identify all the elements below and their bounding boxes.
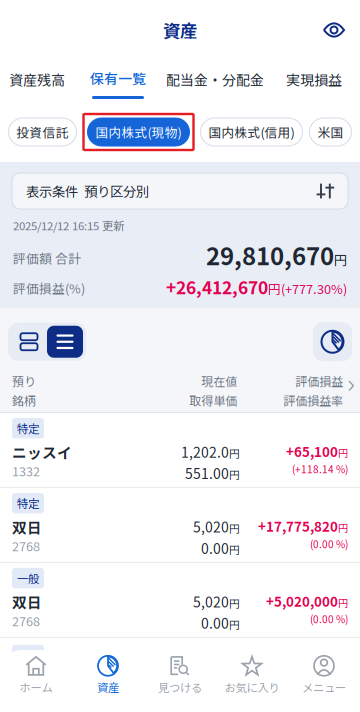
button[interactable]: 配当金・分配金 — [162, 60, 268, 102]
staticText: 現在値 — [201, 372, 237, 390]
staticText: 円 — [338, 445, 348, 460]
staticText: 0.00 — [201, 538, 229, 558]
button[interactable]: 投資信託 — [8, 118, 76, 146]
staticText: ニッスイ — [12, 441, 72, 463]
staticText: +26,412,670 — [166, 274, 268, 299]
staticText: 一般 — [17, 647, 39, 663]
button[interactable]: 特定 — [0, 413, 360, 487]
staticText: 5,020 — [193, 516, 229, 537]
button[interactable]: お気に入り — [216, 648, 288, 702]
staticText: 2025/12/12 16:15 更新 — [13, 217, 124, 233]
staticText: 表示条件 預り区分別 — [26, 181, 149, 201]
button[interactable]: カード表示 — [11, 326, 47, 358]
staticText: 国内株式(現物) — [95, 123, 181, 141]
button[interactable]: 資産 — [72, 648, 144, 702]
staticText: ホーム — [19, 679, 52, 695]
staticText: 551.00 — [185, 463, 229, 483]
staticText: 預り — [12, 372, 36, 390]
staticText: (0.00 %) — [310, 612, 348, 626]
staticText: 円 — [229, 542, 240, 557]
staticText: 5,020 — [193, 591, 229, 612]
button[interactable]: 国内株式(現物) — [83, 114, 193, 150]
staticText: 円 — [229, 595, 240, 611]
staticText: 保有一覧 — [90, 68, 146, 88]
button[interactable]: 保有一覧 — [74, 60, 162, 102]
staticText: 国内株式(信用) — [208, 123, 294, 141]
button[interactable]: 一般 — [0, 563, 360, 637]
staticText: +17,775,820 — [258, 516, 338, 536]
button[interactable]: ホーム — [0, 648, 72, 702]
staticText: 評価損益率 — [283, 392, 343, 409]
button[interactable]: 特定 — [0, 488, 360, 562]
staticText: 1,202.0 — [181, 441, 229, 462]
staticText: お気に入り — [224, 679, 279, 695]
staticText: 配当金・分配金 — [166, 69, 264, 90]
staticText: 米国 — [317, 123, 343, 141]
staticText: 29,810,670 — [206, 237, 334, 272]
staticText: 取得単価 — [189, 392, 237, 409]
staticText: メニュー — [302, 679, 346, 695]
staticText: 資産残高 — [9, 69, 65, 90]
staticText: 評価損益(%) — [13, 279, 85, 297]
staticText: 2768 — [12, 537, 40, 555]
staticText: 見つける — [158, 679, 202, 695]
staticText: 資産 — [163, 17, 197, 43]
button[interactable]: 円グラフ — [313, 322, 352, 361]
staticText: +65,100 — [286, 441, 338, 461]
staticText: (+118.14 %) — [292, 462, 348, 476]
staticText: 一般 — [17, 570, 39, 586]
staticText: 評価損益 — [295, 372, 343, 390]
staticText: 円 — [338, 520, 348, 535]
staticText: 双日 — [12, 591, 42, 612]
button[interactable]: 米国 — [309, 118, 351, 146]
staticText: 円 — [229, 617, 240, 632]
staticText: 0.00 — [201, 613, 229, 633]
button[interactable]: 実現損益 — [268, 60, 360, 102]
staticText: 円 — [229, 445, 240, 461]
staticText: 実現損益 — [286, 69, 342, 90]
staticText: (+777.30%) — [281, 279, 347, 298]
button[interactable]: 見つける — [144, 648, 216, 702]
staticText: +5,020,000 — [266, 591, 338, 611]
staticText: 特定 — [17, 420, 39, 436]
button[interactable]: メニュー — [288, 648, 360, 702]
staticText: 1332 — [12, 462, 40, 480]
staticText: 円 — [268, 279, 281, 298]
button[interactable]: 国内株式(信用) — [200, 118, 302, 146]
staticText: 双日 — [12, 516, 42, 538]
button[interactable]: 表示切替 — [312, 8, 356, 52]
staticText: 2768 — [12, 612, 40, 630]
staticText: 評価額 合計 — [13, 249, 81, 267]
staticText: 円 — [229, 467, 240, 482]
button[interactable]: 資産残高 — [0, 60, 74, 102]
staticText: (0.00 %) — [310, 537, 348, 551]
staticText: 資産 — [97, 679, 119, 695]
staticText: 円 — [334, 250, 347, 269]
staticText: 投資信託 — [16, 123, 68, 141]
button[interactable]: リスト表示 — [47, 326, 83, 358]
staticText: 銘柄 — [12, 392, 36, 409]
staticText: 円 — [229, 520, 240, 536]
staticText: 円 — [338, 595, 348, 610]
staticText: 特定 — [17, 495, 39, 511]
